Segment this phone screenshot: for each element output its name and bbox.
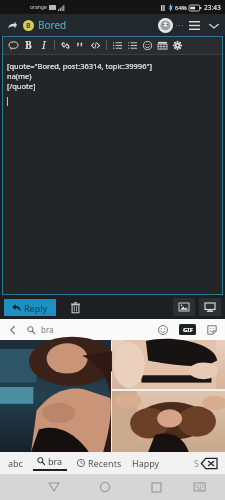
staticText: I (42, 38, 46, 52)
button[interactable]: Preview (199, 298, 221, 316)
staticText: GIF (183, 326, 193, 334)
staticText: ⋯ (175, 21, 183, 30)
staticText: [/quote] (7, 81, 36, 91)
button[interactable]: Delete (66, 298, 84, 316)
button[interactable]: Image result 1 (0, 340, 111, 452)
button[interactable]: Recent apps (144, 475, 168, 499)
button[interactable]: Share (4, 17, 20, 33)
staticText: bra (48, 455, 63, 467)
button[interactable]: Stickers (204, 322, 220, 338)
button[interactable]: Image result 3 (112, 391, 225, 452)
button[interactable]: Backspace (199, 456, 219, 470)
button[interactable]: Back (42, 475, 66, 499)
button[interactable]: Comment (6, 36, 21, 54)
button[interactable]: Quote (73, 36, 88, 54)
button[interactable]: Menu (186, 17, 203, 34)
staticText: orange (30, 4, 47, 11)
button[interactable]: Bullet list (110, 36, 125, 54)
button[interactable]: Settings (170, 36, 185, 54)
button[interactable]: Hide keyboard (187, 475, 211, 499)
staticText: bra (41, 324, 54, 335)
button[interactable]: Home (93, 475, 117, 499)
button[interactable]: Emoji (155, 322, 171, 338)
button[interactable]: I (36, 36, 51, 54)
button[interactable]: Reply (4, 299, 56, 316)
button[interactable]: Emoji (140, 36, 155, 54)
button[interactable]: Upload (155, 36, 170, 54)
button[interactable]: Happy (132, 457, 160, 469)
staticText: abc (8, 457, 23, 469)
button[interactable]: Code (88, 36, 103, 54)
staticText: Happy (132, 457, 160, 469)
staticText: Reply (24, 302, 48, 314)
button[interactable]: abc (6, 457, 25, 469)
button[interactable]: Recents (77, 457, 122, 469)
button[interactable]: Link (58, 36, 73, 54)
button[interactable]: Numbered list (125, 36, 140, 54)
staticText: na(me) (7, 71, 32, 81)
button[interactable]: bra (33, 455, 67, 471)
staticText: 23:43 (204, 3, 221, 12)
staticText: [quote="Bored, post:36314, topic:39996"] (7, 61, 152, 71)
button[interactable]: Profile (158, 18, 173, 33)
staticText: Bored (38, 18, 67, 32)
button[interactable]: B (21, 36, 36, 54)
button[interactable]: Collapse (205, 17, 222, 34)
staticText: B (26, 21, 31, 31)
button[interactable]: GIF (179, 324, 196, 335)
staticText: S (194, 457, 199, 469)
staticText: B (25, 38, 32, 52)
button[interactable]: Image result 2 (112, 340, 225, 389)
button[interactable]: Insert image (173, 298, 195, 316)
staticText: Recents (88, 457, 122, 469)
button[interactable]: Back (5, 323, 19, 337)
staticText: 64% (175, 4, 187, 12)
